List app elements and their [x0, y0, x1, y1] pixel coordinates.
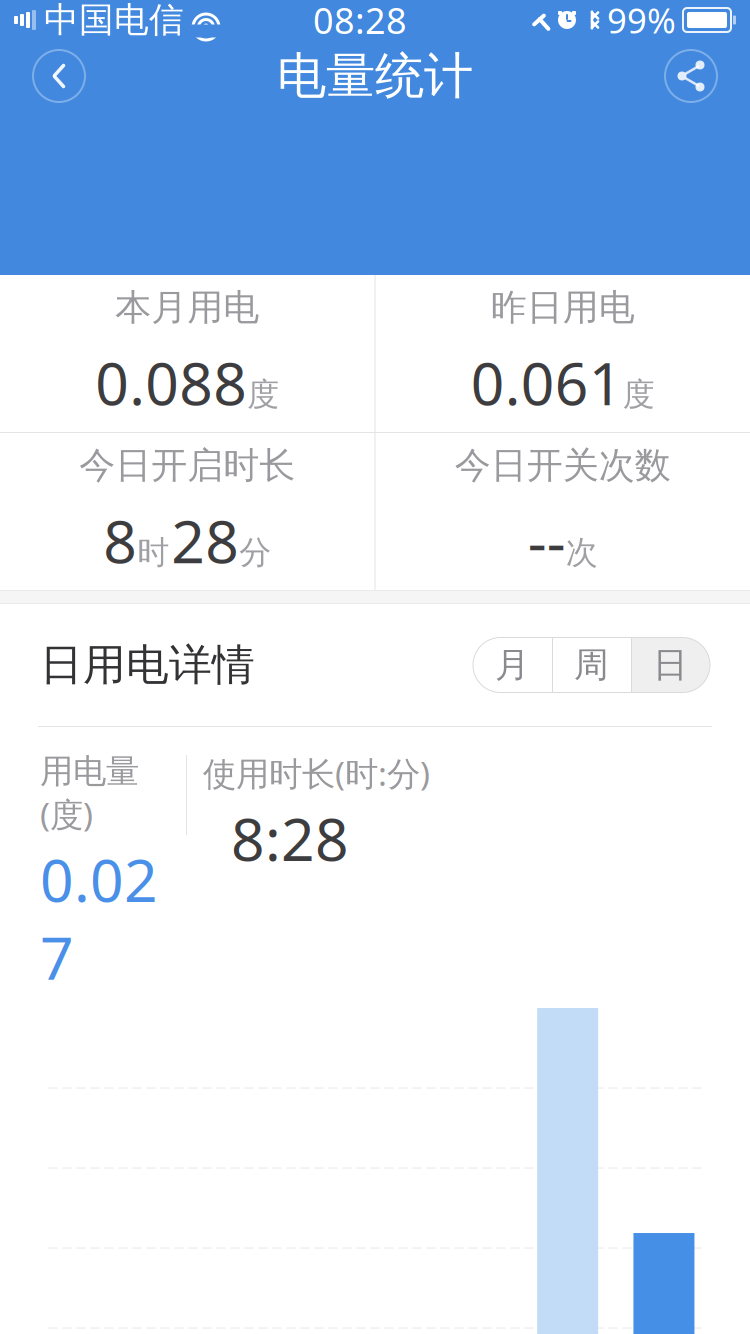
button[interactable]: 日	[631, 637, 710, 692]
staticText: 昨日用电	[491, 285, 635, 330]
button[interactable]: 月	[473, 637, 552, 692]
staticText: 8:28	[231, 799, 349, 877]
staticText: 99%	[607, 0, 676, 43]
staticText: 日	[653, 644, 688, 686]
button[interactable]: 周	[552, 637, 631, 692]
staticText: 8	[103, 502, 137, 580]
staticText: 今日开启时长	[79, 443, 295, 488]
staticText: 日用电详情	[40, 639, 255, 691]
staticText: 0.027	[40, 840, 158, 996]
staticText: 周	[574, 644, 609, 686]
staticText: --	[528, 502, 566, 580]
staticText: 用电量(度)	[40, 751, 139, 836]
button[interactable]: Back	[20, 40, 98, 112]
staticText: 度	[623, 375, 655, 414]
staticText: 时	[137, 533, 169, 572]
staticText: 月	[495, 644, 530, 686]
staticText: 次	[566, 533, 598, 572]
staticText: 分	[239, 533, 271, 572]
staticText: 中国电信	[44, 0, 184, 41]
staticText: 08:28	[313, 0, 407, 44]
staticText: 电量统计	[277, 46, 473, 106]
staticText: 本月用电	[115, 285, 259, 330]
staticText: 0.061	[471, 344, 623, 422]
button[interactable]: Share	[652, 40, 730, 112]
staticText: 28	[171, 502, 239, 580]
staticText: 今日开关次数	[455, 443, 671, 488]
staticText: 0.088	[95, 344, 247, 422]
staticText: 使用时长(时:分)	[203, 751, 430, 795]
staticText: 度	[247, 375, 279, 414]
